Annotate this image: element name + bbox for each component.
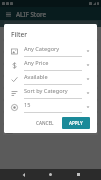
button[interactable]: Recents [74, 170, 83, 179]
staticText: Any Category [24, 45, 60, 53]
button[interactable]: Menu [4, 10, 12, 18]
staticText: CANCEL [36, 120, 54, 126]
button[interactable] [3, 53, 98, 63]
staticText: ALIF Store [16, 10, 47, 18]
staticText: Available [24, 73, 48, 81]
button[interactable] [3, 125, 98, 135]
staticText: Filter [11, 30, 28, 39]
button[interactable] [3, 77, 98, 87]
button[interactable]: Any Category [11, 44, 90, 58]
button[interactable]: Back [19, 170, 28, 179]
button[interactable]: APPLY [62, 117, 90, 129]
button[interactable] [3, 65, 98, 75]
staticText: Any Price [24, 59, 49, 67]
button[interactable] [3, 29, 98, 39]
button[interactable] [3, 101, 98, 111]
button[interactable]: Home [46, 170, 55, 179]
button[interactable] [3, 41, 98, 51]
staticText: Sort by Category [24, 87, 68, 95]
staticText: 15 [24, 101, 31, 109]
button[interactable]: Any Price [11, 58, 90, 72]
staticText: APPLY [69, 120, 83, 126]
button[interactable] [3, 89, 98, 99]
button[interactable]: CANCEL [32, 117, 58, 129]
button[interactable]: Sort by Category [11, 86, 90, 100]
button[interactable] [3, 113, 98, 123]
button[interactable]: 15 [11, 100, 90, 114]
button[interactable]: Available [11, 72, 90, 86]
